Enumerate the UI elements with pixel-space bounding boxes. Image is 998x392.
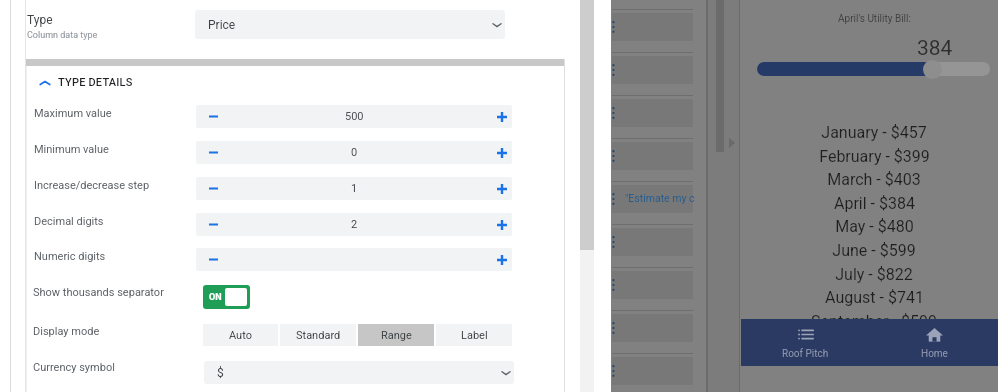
button[interactable]: Increase bbox=[492, 248, 512, 271]
staticText: 0 bbox=[351, 146, 358, 159]
button[interactable]: Decrease bbox=[196, 141, 231, 164]
button[interactable]: Range bbox=[358, 324, 434, 346]
button[interactable]: Increase bbox=[492, 141, 512, 164]
staticText: 500 bbox=[345, 110, 364, 123]
button[interactable]: Increase bbox=[492, 105, 512, 128]
staticText: Minimum value bbox=[34, 143, 109, 156]
staticText: "Estimate my c bbox=[625, 192, 695, 204]
staticText: ON bbox=[209, 292, 222, 303]
staticText: March - $403 bbox=[827, 170, 921, 189]
staticText: Auto bbox=[229, 329, 252, 342]
staticText: September - $599 bbox=[811, 312, 937, 331]
staticText: May - $480 bbox=[835, 217, 914, 236]
staticText: 2 bbox=[351, 218, 358, 231]
button[interactable]: Decrease bbox=[196, 248, 231, 271]
staticText: Column data type bbox=[27, 30, 98, 41]
button[interactable]: TYPE DETAILS bbox=[39, 76, 133, 89]
button[interactable]: Label bbox=[436, 324, 512, 346]
staticText: TYPE DETAILS bbox=[58, 76, 133, 89]
staticText: Roof Pitch bbox=[782, 348, 829, 360]
button[interactable]: Auto bbox=[203, 324, 278, 346]
button[interactable]: Home bbox=[870, 319, 998, 366]
button[interactable]: Roof Pitch bbox=[741, 319, 870, 366]
staticText: January - $457 bbox=[821, 123, 927, 142]
button[interactable]: Bill amount slider bbox=[923, 60, 942, 79]
staticText: 384 bbox=[917, 36, 953, 61]
staticText: Display mode bbox=[33, 325, 100, 338]
staticText: Type bbox=[27, 13, 53, 27]
staticText: August - $741 bbox=[825, 288, 924, 307]
button[interactable]: $ bbox=[204, 361, 514, 384]
staticText: $ bbox=[217, 366, 224, 380]
button[interactable]: Standard bbox=[280, 324, 356, 346]
button[interactable]: Increase bbox=[492, 213, 512, 236]
staticText: Increase/decrease step bbox=[34, 179, 150, 192]
staticText: June - $599 bbox=[832, 241, 916, 260]
button[interactable]: Decrease bbox=[196, 105, 231, 128]
button[interactable]: Decrease bbox=[196, 177, 231, 200]
staticText: 1 bbox=[351, 182, 358, 195]
staticText: Currency symbol bbox=[33, 361, 115, 374]
staticText: July - $822 bbox=[835, 265, 913, 284]
staticText: Price bbox=[208, 18, 236, 32]
button[interactable]: Decrease bbox=[196, 213, 231, 236]
staticText: Decimal digits bbox=[34, 215, 104, 228]
staticText: February - $399 bbox=[819, 147, 930, 166]
staticText: April - $384 bbox=[834, 194, 915, 213]
staticText: April's Utility Bill: bbox=[838, 13, 911, 25]
staticText: Show thousands separator bbox=[33, 286, 164, 299]
staticText: Standard bbox=[296, 329, 341, 342]
button[interactable]: ON bbox=[203, 285, 250, 309]
staticText: Label bbox=[461, 329, 488, 342]
staticText: Numeric digits bbox=[34, 250, 106, 263]
button[interactable]: Increase bbox=[492, 177, 512, 200]
staticText: Maximum value bbox=[34, 107, 112, 120]
button[interactable]: Price bbox=[195, 10, 505, 39]
staticText: Home bbox=[921, 348, 948, 360]
staticText: Range bbox=[381, 329, 412, 342]
